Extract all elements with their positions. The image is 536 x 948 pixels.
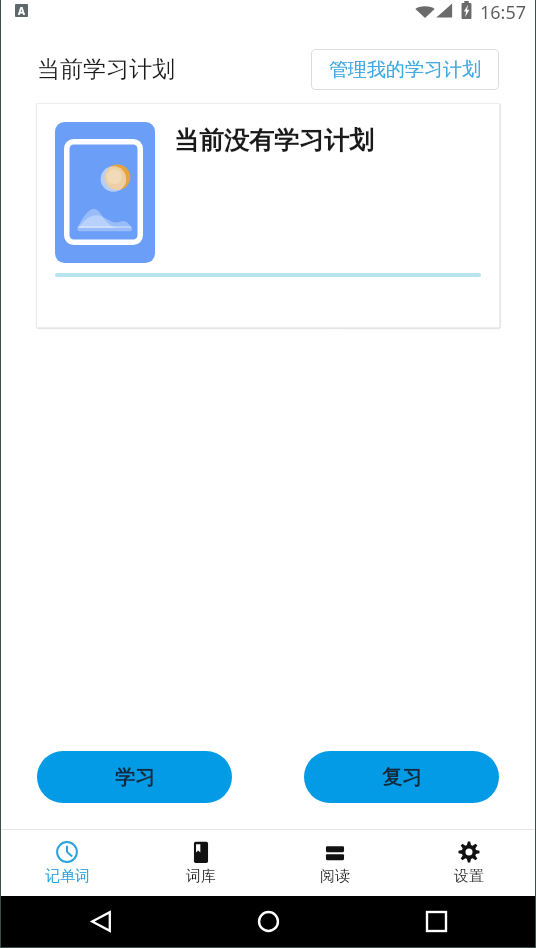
staticText: 16:57 bbox=[480, 0, 527, 25]
button[interactable]: Recents bbox=[408, 896, 464, 948]
button[interactable]: 当前没有学习计划 bbox=[36, 103, 500, 328]
button[interactable]: Back bbox=[73, 896, 129, 948]
staticText: A bbox=[18, 4, 25, 17]
button[interactable]: 词库 bbox=[134, 835, 268, 892]
button[interactable]: 记单词 bbox=[0, 835, 134, 892]
staticText: 当前学习计划 bbox=[37, 55, 175, 84]
button[interactable]: Home bbox=[240, 896, 296, 948]
staticText: 阅读 bbox=[320, 867, 350, 886]
staticText: 管理我的学习计划 bbox=[329, 58, 481, 82]
button[interactable]: 复习 bbox=[304, 751, 499, 803]
button[interactable]: 学习 bbox=[37, 751, 232, 803]
staticText: 设置 bbox=[454, 867, 484, 886]
button[interactable]: 管理我的学习计划 bbox=[311, 49, 499, 90]
staticText: 复习 bbox=[382, 765, 422, 790]
button[interactable]: 阅读 bbox=[268, 835, 402, 892]
staticText: 记单词 bbox=[45, 867, 90, 886]
button[interactable]: 设置 bbox=[402, 835, 536, 892]
staticText: 当前没有学习计划 bbox=[174, 125, 374, 156]
staticText: 词库 bbox=[186, 867, 216, 886]
staticText: 学习 bbox=[115, 765, 155, 790]
